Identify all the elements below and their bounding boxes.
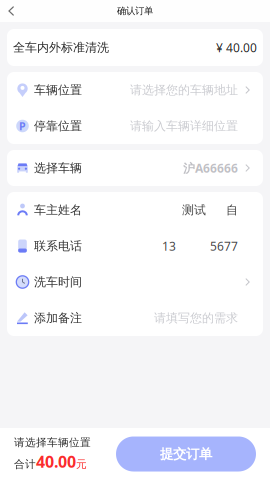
button[interactable]: 车主姓名 [7,192,263,228]
staticText: 请选择您的车辆地址 [130,83,238,97]
staticText: 测试 [182,203,206,217]
staticText: 13 [162,238,176,254]
staticText: 请填写您的需求 [154,311,238,325]
button[interactable]: 车辆位置 [7,72,263,108]
staticText: ¥ 40.00 [216,39,257,55]
staticText: P [19,119,26,133]
staticText: 40.00 [36,451,76,472]
button[interactable]: 联系电话 [7,228,263,264]
staticText: 请选择车辆位置 [14,436,91,449]
staticText: 5677 [210,238,238,254]
button[interactable]: 返回 [0,2,23,20]
staticText: 停靠位置 [34,119,82,133]
staticText: 车辆位置 [34,83,82,97]
staticText: 提交订单 [160,446,212,462]
staticText: 沪A66666 [183,160,238,176]
staticText: 请输入车辆详细位置 [130,119,238,133]
staticText: 全车内外标准清洗 [13,40,109,55]
staticText: 确认订单 [117,5,153,17]
button[interactable]: 提交订单 [116,436,256,471]
staticText: 洗车时间 [34,275,82,289]
staticText: 选择车辆 [34,161,82,175]
button[interactable]: 洗车时间 [7,264,263,300]
staticText: 联系电话 [34,239,82,253]
staticText: 元 [76,458,87,471]
staticText: 添加备注 [34,311,82,325]
staticText: 车主姓名 [34,203,82,217]
button[interactable]: P [7,108,263,144]
staticText: 合计 [14,458,36,471]
staticText: 自 [226,203,238,217]
button[interactable]: 添加备注 [7,300,263,336]
button[interactable]: 选择车辆 [7,150,263,186]
